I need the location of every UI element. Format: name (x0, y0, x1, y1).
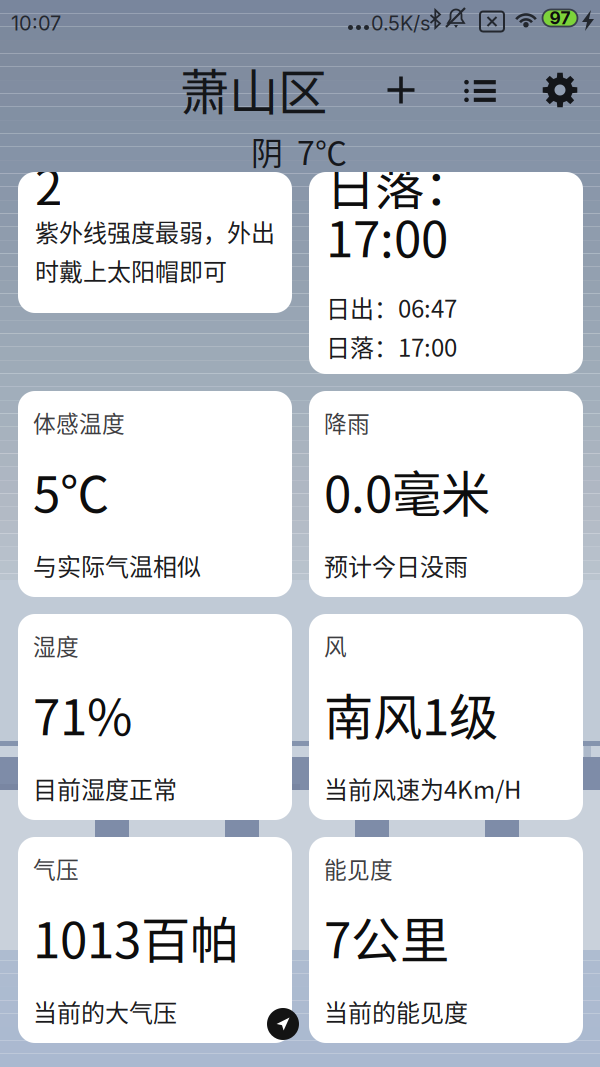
staticText: 0.0毫米 (324, 455, 490, 526)
button[interactable]: 降雨 (309, 391, 583, 597)
button[interactable]: 日落： (309, 172, 583, 374)
staticText: 71% (33, 678, 132, 749)
staticText: 日落： (326, 148, 473, 219)
staticText: 2 (35, 148, 62, 219)
staticText: 风 (324, 629, 347, 662)
button[interactable]: 气压 (18, 837, 292, 1043)
button[interactable]: 能见度 (309, 837, 583, 1043)
staticText: 萧山区 (180, 53, 327, 124)
staticText: 目前湿度正常 (33, 771, 177, 806)
staticText: 湿度 (33, 629, 79, 662)
staticText: 紫外线强度最弱，外出 (35, 214, 275, 249)
staticText: 降雨 (324, 406, 370, 439)
button[interactable]: 湿度 (18, 614, 292, 820)
button[interactable]: Locate me (262, 1003, 304, 1045)
staticText: 1013百帕 (33, 901, 239, 972)
button[interactable]: 体感温度 (18, 391, 292, 597)
button[interactable]: City list (453, 60, 507, 122)
staticText: 日落：17:00 (326, 329, 457, 364)
staticText: 日出：06:47 (326, 290, 457, 325)
staticText: 与实际气温相似 (33, 548, 201, 583)
staticText: 当前的大气压 (33, 994, 177, 1029)
staticText: 7公里 (324, 901, 449, 972)
staticText: 当前风速为4Km/H (324, 771, 521, 806)
button[interactable]: 2 (18, 172, 292, 313)
staticText: 气压 (33, 852, 79, 885)
staticText: 17:00 (326, 200, 448, 271)
staticText: 预计今日没雨 (324, 548, 468, 583)
staticText: 南风1级 (324, 678, 498, 749)
staticText: 97 (549, 7, 570, 28)
staticText: 0.5K/s (371, 11, 430, 35)
staticText: 时戴上太阳帽即可 (35, 253, 227, 288)
button[interactable]: 风 (309, 614, 583, 820)
staticText: 10:07 (11, 11, 61, 35)
staticText: 阴 7℃ (251, 128, 347, 174)
staticText: 5℃ (33, 455, 109, 526)
staticText: 能见度 (324, 852, 393, 885)
button[interactable]: Settings (533, 59, 587, 121)
staticText: 当前的能见度 (324, 994, 468, 1029)
button[interactable]: Add city (374, 59, 428, 121)
staticText: 体感温度 (33, 406, 125, 439)
